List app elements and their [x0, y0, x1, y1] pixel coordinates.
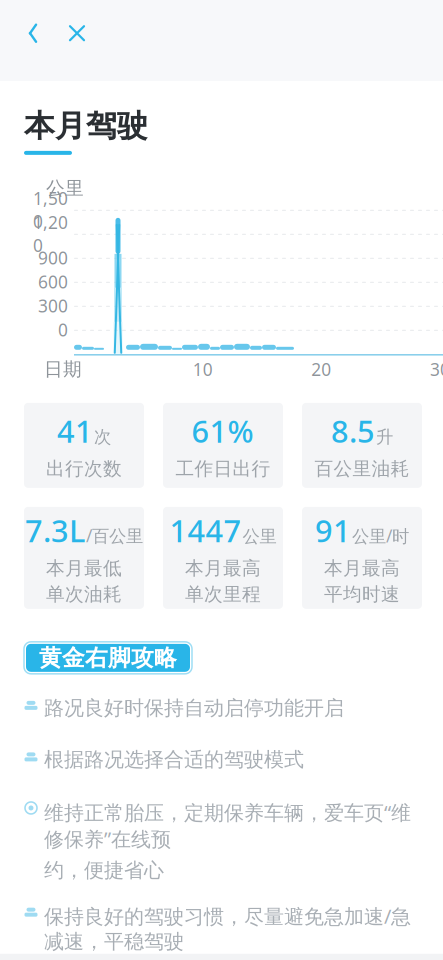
- staticText: 工作日出行: [175, 457, 270, 480]
- staticText: 根据路况选择合适的驾驶模式: [44, 747, 304, 772]
- staticText: 约，便捷省心: [44, 858, 164, 883]
- staticText: 保持良好的驾驶习惯，尽量避免急加速/急减速，平稳驾驶: [44, 903, 411, 954]
- staticText: /百公里: [86, 524, 143, 547]
- staticText: 30: [430, 358, 443, 381]
- staticText: 8.5: [331, 410, 375, 451]
- staticText: 百公里油耗: [314, 457, 409, 480]
- staticText: 本月最高: [185, 557, 261, 580]
- staticText: 单次里程: [185, 583, 261, 606]
- staticText: 1447: [169, 510, 241, 551]
- staticText: 1,200: [33, 211, 68, 257]
- staticText: 0: [58, 318, 68, 341]
- staticText: 日期: [44, 358, 82, 381]
- staticText: 41: [57, 410, 93, 451]
- staticText: 300: [38, 294, 68, 317]
- button[interactable]: 91: [302, 507, 422, 609]
- staticText: 61%: [191, 410, 253, 451]
- staticText: 维持正常胎压，定期保养车辆，爱车页“维修保养”在线预: [44, 799, 411, 852]
- staticText: 出行次数: [46, 457, 122, 480]
- staticText: 次: [94, 426, 111, 448]
- staticText: 公里: [46, 177, 84, 200]
- staticText: 7.3L: [25, 510, 85, 551]
- button[interactable]: Back: [11, 11, 55, 55]
- staticText: 黄金右脚攻略: [39, 644, 177, 672]
- button[interactable]: 41: [24, 403, 144, 488]
- button[interactable]: Close: [55, 11, 99, 55]
- staticText: 升: [376, 426, 393, 448]
- staticText: 本月最高: [324, 557, 400, 580]
- staticText: 平均时速: [324, 583, 400, 606]
- staticText: 20: [311, 358, 331, 381]
- staticText: 10: [193, 358, 213, 381]
- staticText: 公里/时: [352, 524, 409, 547]
- button[interactable]: 黄金右脚攻略: [24, 642, 192, 674]
- button[interactable]: 1447: [163, 507, 283, 609]
- staticText: 本月驾驶: [24, 107, 148, 145]
- staticText: 91: [315, 510, 351, 551]
- staticText: 公里: [242, 526, 276, 547]
- staticText: 900: [38, 246, 68, 269]
- button[interactable]: 8.5: [302, 403, 422, 488]
- staticText: 1,500: [33, 187, 68, 233]
- staticText: 路况良好时保持自动启停功能开启: [44, 696, 344, 720]
- staticText: 单次油耗: [46, 583, 122, 606]
- staticText: 本月最低: [46, 557, 122, 580]
- staticText: 600: [38, 270, 68, 293]
- button[interactable]: 61%: [163, 403, 283, 488]
- button[interactable]: 7.3L: [24, 507, 144, 609]
